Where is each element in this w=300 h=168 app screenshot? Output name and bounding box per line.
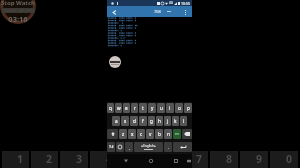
button[interactable]: k xyxy=(172,116,179,126)
staticText: l xyxy=(183,118,185,124)
staticText: f xyxy=(142,118,144,124)
button[interactable]: More options xyxy=(181,8,189,16)
staticText: 03:16 xyxy=(8,14,28,24)
button[interactable]: Back xyxy=(110,8,118,16)
button[interactable]: 9 xyxy=(240,151,268,168)
staticText: t xyxy=(142,105,144,111)
staticText: n xyxy=(167,131,170,137)
staticText: s xyxy=(124,118,127,124)
staticText: g xyxy=(150,118,153,124)
staticText: 10:55 xyxy=(181,1,190,6)
button[interactable]: Home xyxy=(146,156,156,166)
button[interactable]: j xyxy=(164,116,171,126)
button[interactable]: Enter xyxy=(173,142,192,152)
button[interactable]: 5 xyxy=(120,151,148,168)
staticText: !1# xyxy=(109,145,114,149)
button[interactable]: u xyxy=(157,103,165,113)
button[interactable]: t xyxy=(139,103,147,113)
staticText: 7 xyxy=(196,152,203,166)
staticText: 0 xyxy=(286,152,293,166)
button[interactable]: g xyxy=(148,116,155,126)
staticText: 00:00:00 LAP 00:00 xyxy=(4,9,34,13)
button[interactable]: p xyxy=(184,103,192,113)
staticText: d xyxy=(133,118,136,124)
staticText: 5 xyxy=(136,152,143,166)
staticText: k xyxy=(174,118,177,124)
button[interactable]: , xyxy=(125,142,133,152)
button[interactable]: d xyxy=(130,116,138,126)
button[interactable]: Backspace xyxy=(182,129,192,139)
staticText: r xyxy=(134,105,136,111)
button[interactable]: e xyxy=(123,103,130,113)
staticText: v xyxy=(149,131,152,137)
button[interactable]: Back xyxy=(121,156,131,166)
button[interactable]: h xyxy=(156,116,163,126)
button[interactable]: o xyxy=(175,103,183,113)
button[interactable]: App icon xyxy=(109,56,121,68)
staticText: , xyxy=(129,145,130,150)
staticText: y xyxy=(151,105,154,111)
button[interactable]: Recents xyxy=(171,156,181,166)
staticText: i xyxy=(169,105,171,111)
button[interactable]: f xyxy=(139,116,147,126)
button[interactable]: v xyxy=(146,129,154,139)
staticText: ◂ English ▸ xyxy=(141,144,156,148)
staticText: 3 xyxy=(76,152,83,166)
staticText: 1 xyxy=(17,152,24,166)
button[interactable]: Space xyxy=(134,142,163,152)
button[interactable]: c xyxy=(137,129,145,139)
button[interactable]: x xyxy=(128,129,136,139)
staticText: Stop Watch xyxy=(1,0,35,7)
button[interactable]: i xyxy=(166,103,174,113)
staticText: x xyxy=(131,131,134,137)
button[interactable]: s xyxy=(121,116,129,126)
button[interactable]: 0 xyxy=(270,151,298,168)
staticText: . xyxy=(168,145,169,150)
button[interactable]: 6 xyxy=(150,151,178,168)
staticText: j xyxy=(167,118,169,124)
button[interactable]: Show keyboard xyxy=(184,156,194,166)
staticText: u xyxy=(160,105,163,111)
staticText: e xyxy=(125,105,128,111)
staticText: z xyxy=(122,131,125,137)
staticText: q xyxy=(109,105,112,111)
button[interactable]: b xyxy=(155,129,163,139)
staticText: c xyxy=(140,131,143,137)
staticText: 8 xyxy=(226,152,233,166)
staticText: 2 xyxy=(46,152,53,166)
other: Terminal output xyxy=(107,17,192,47)
button[interactable]: y xyxy=(148,103,156,113)
button[interactable]: q xyxy=(107,103,114,113)
button[interactable]: 1 xyxy=(2,151,29,168)
staticText: a xyxy=(115,118,118,124)
button[interactable]: m xyxy=(173,129,181,139)
button[interactable]: n xyxy=(164,129,172,139)
staticText: b xyxy=(158,131,161,137)
staticText: 4 xyxy=(106,152,113,166)
staticText: o xyxy=(178,105,181,111)
button[interactable]: l xyxy=(180,116,187,126)
button[interactable]: a xyxy=(112,116,120,126)
staticText: p xyxy=(187,105,190,111)
staticText: w xyxy=(117,105,121,111)
staticText: 9 xyxy=(256,152,263,166)
staticText: m xyxy=(175,131,179,137)
staticText: 6 xyxy=(166,152,173,166)
button[interactable]: 3 xyxy=(60,151,88,168)
button[interactable]: w xyxy=(115,103,122,113)
staticText: 4G xyxy=(169,1,173,5)
button[interactable]: Shift xyxy=(107,129,118,139)
button[interactable]: 4 xyxy=(90,151,118,168)
button[interactable]: . xyxy=(164,142,172,152)
button[interactable]: 8 xyxy=(210,151,238,168)
button[interactable]: Stop Watch xyxy=(0,0,36,24)
button[interactable]: !1# xyxy=(107,142,115,152)
staticText: 768 xyxy=(154,9,161,14)
button[interactable]: 2 xyxy=(31,151,58,168)
button[interactable]: Emoji xyxy=(116,142,124,152)
button[interactable]: 7 xyxy=(180,151,208,168)
staticText: h xyxy=(158,118,161,124)
button[interactable]: r xyxy=(131,103,138,113)
button[interactable]: z xyxy=(119,129,127,139)
